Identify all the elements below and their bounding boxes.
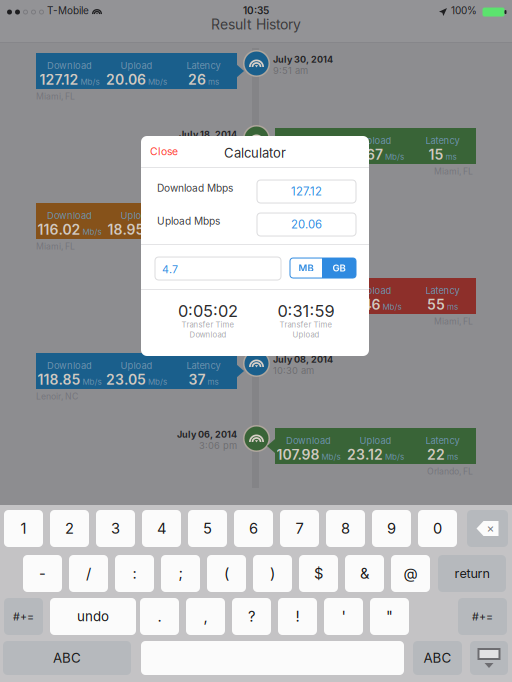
button[interactable]: 8 [326, 510, 365, 547]
staticText: 127.12 [39, 71, 78, 88]
button[interactable]: ? [232, 598, 271, 635]
staticText: Miami, FL [434, 316, 473, 326]
staticText: Transfer Time [181, 320, 234, 329]
button[interactable]: & [345, 555, 384, 592]
staticText: Mb/s [385, 152, 404, 162]
staticText: 107.98 [276, 446, 319, 463]
button[interactable]: return [438, 555, 506, 592]
staticText: Upload [120, 60, 152, 71]
button[interactable]: #+= [458, 598, 507, 635]
button[interactable]: : [115, 555, 154, 592]
staticText: ms [445, 152, 456, 162]
button[interactable]: @ [391, 555, 430, 592]
staticText: Mb/s [321, 452, 340, 462]
staticText: 5 [203, 520, 212, 537]
staticText: Download [286, 285, 331, 296]
staticText: ms [447, 452, 458, 462]
staticText: 9.46 [349, 296, 380, 313]
button[interactable]: " [370, 598, 409, 635]
staticText: 98.71 [280, 146, 316, 163]
button[interactable]: $ [299, 555, 338, 592]
staticText: Calculator [224, 145, 286, 161]
button[interactable]: Close [141, 136, 194, 167]
staticText: Download [286, 435, 331, 446]
staticText: Upload Mbps [157, 215, 220, 227]
staticText: #+= [472, 610, 493, 623]
staticText: Mb/s [385, 452, 404, 462]
staticText: July 06, 2014 [177, 429, 237, 440]
staticText: Mb/s [148, 377, 167, 387]
staticText: : [132, 565, 136, 582]
staticText: ABC [423, 650, 451, 666]
button[interactable]: . [140, 598, 179, 635]
button[interactable]: 0 [418, 510, 457, 547]
staticText: 37 [188, 371, 205, 388]
button[interactable]: ! [278, 598, 317, 635]
button[interactable]: GB [322, 258, 356, 278]
staticText: 18.95 [107, 221, 144, 238]
staticText: 6 [249, 520, 258, 537]
button[interactable]: 6 [234, 510, 273, 547]
staticText: $ [314, 565, 323, 582]
button[interactable]: 5 [188, 510, 227, 547]
button[interactable]: ; [161, 555, 200, 592]
button[interactable]: MB [290, 258, 322, 278]
staticText: Mb/s [82, 377, 101, 387]
staticText: Mb/s [80, 77, 99, 87]
button[interactable]: ' [324, 598, 363, 635]
button[interactable]: Hide keyboard [470, 641, 508, 675]
staticText: Mb/s [318, 302, 337, 312]
staticText: 20.06 [291, 218, 322, 231]
staticText: , [203, 608, 207, 625]
button[interactable]: - [23, 555, 62, 592]
staticText: 9 [387, 520, 396, 537]
button[interactable]: 1 [4, 510, 43, 547]
staticText: ABC [53, 650, 81, 666]
button[interactable]: / [69, 555, 108, 592]
staticText: 10:35 [243, 4, 269, 17]
staticText: 26 [188, 71, 206, 88]
staticText: 23.12 [347, 446, 383, 463]
button[interactable]: ) [253, 555, 292, 592]
staticText: Orlando, FL [427, 466, 473, 476]
staticText: 0:31:59 [277, 301, 334, 321]
staticText: Result History [211, 16, 301, 33]
button[interactable]: , [186, 598, 225, 635]
button[interactable]: #+= [4, 598, 43, 635]
button[interactable]: 7 [280, 510, 319, 547]
staticText: Transfer Time [279, 320, 332, 329]
staticText: Upload [359, 435, 391, 446]
staticText: . [157, 608, 161, 625]
staticText: Miami, FL [434, 166, 473, 176]
button[interactable]: 2 [50, 510, 89, 547]
staticText: & [360, 565, 369, 582]
button[interactable]: 4 [142, 510, 181, 547]
staticText: 31 [189, 221, 204, 238]
staticText: 3 [111, 520, 120, 537]
staticText: Miami, FL [36, 241, 75, 251]
button[interactable]: ABC [3, 641, 131, 675]
staticText: Latency [425, 285, 459, 296]
button[interactable]: undo [50, 598, 136, 635]
staticText: July 18, 2014 [179, 129, 237, 140]
staticText: Close [150, 145, 178, 158]
staticText: 8:12 am [202, 140, 237, 151]
staticText: Upload [359, 285, 391, 296]
staticText: Download [47, 360, 92, 371]
button[interactable]: 3 [96, 510, 135, 547]
staticText: Upload [359, 135, 391, 146]
staticText: ' [341, 608, 345, 625]
staticText: Download [47, 210, 92, 221]
staticText: Miami, FL [36, 91, 75, 101]
button[interactable]: Delete [467, 510, 508, 547]
button[interactable]: ( [207, 555, 246, 592]
button[interactable]: 9 [372, 510, 411, 547]
staticText: 55 [427, 296, 445, 313]
staticText: Download [189, 330, 226, 339]
button[interactable]: ABC [413, 641, 462, 675]
staticText: ms [208, 77, 219, 87]
staticText: Mb/s [82, 227, 101, 237]
